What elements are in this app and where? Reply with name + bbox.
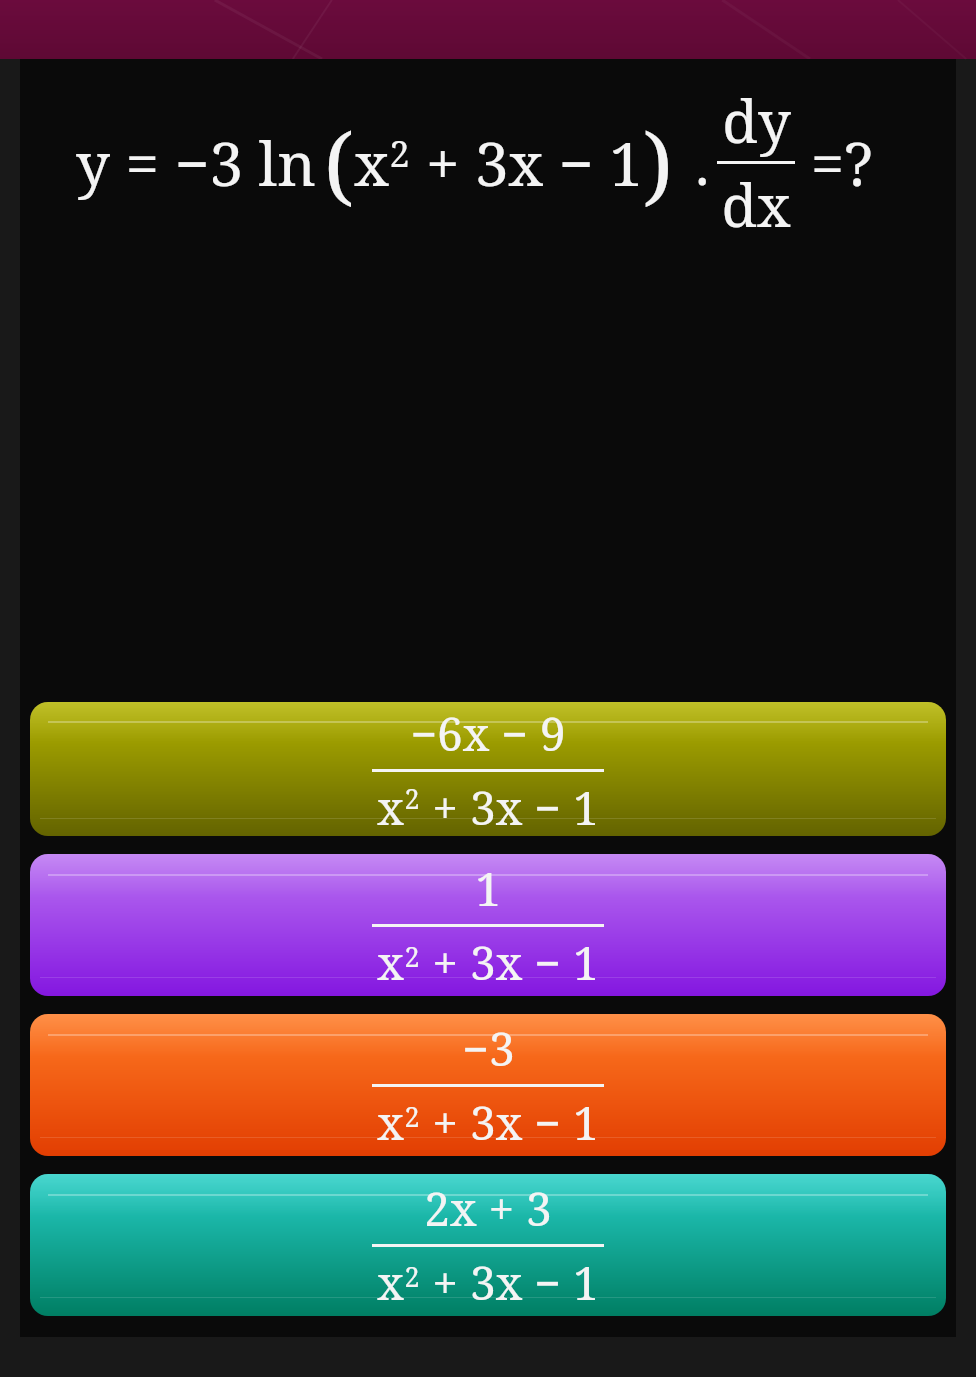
button[interactable]: Answer option 4: [30, 1174, 946, 1316]
staticText: 2: [389, 129, 410, 178]
staticText: ): [643, 104, 673, 221]
staticText: x: [377, 1091, 404, 1154]
staticText: + 3x − 1: [410, 122, 643, 204]
staticText: dx: [721, 165, 791, 244]
staticText: 2x + 3: [424, 1177, 552, 1240]
staticText: x: [377, 776, 404, 836]
staticText: x: [377, 1251, 404, 1314]
staticText: + 3x − 1: [420, 776, 599, 836]
staticText: + 3x − 1: [420, 1251, 599, 1314]
staticText: + 3x − 1: [420, 1091, 599, 1154]
staticText: 2: [404, 780, 420, 817]
staticText: 2: [404, 938, 420, 975]
other: Answer option 4: [30, 1174, 946, 1316]
button[interactable]: Answer option 1: [30, 702, 946, 836]
staticText: 1: [475, 857, 501, 920]
staticText: .: [673, 125, 717, 201]
staticText: 2: [404, 1258, 420, 1295]
staticText: + 3x − 1: [420, 931, 599, 994]
button[interactable]: Answer option 2: [30, 854, 946, 996]
staticText: (: [324, 104, 354, 221]
staticText: −3: [462, 1017, 515, 1080]
button[interactable]: Answer option 3: [30, 1014, 946, 1156]
staticText: =?: [795, 122, 873, 204]
staticText: −6x − 9: [410, 702, 566, 765]
staticText: 2: [404, 1098, 420, 1135]
staticText: dy: [722, 81, 791, 160]
staticText: x: [354, 122, 389, 204]
other: Answer option 2: [30, 854, 946, 996]
other: Answer option 3: [30, 1014, 946, 1156]
other: Answer option 1: [30, 702, 946, 836]
staticText: y = −3 ln: [68, 122, 324, 204]
staticText: x: [377, 931, 404, 994]
